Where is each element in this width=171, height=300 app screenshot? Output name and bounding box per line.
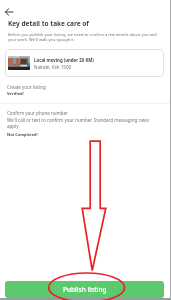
staticText: Create your listing <box>7 84 46 90</box>
button[interactable]: Publish listing <box>5 281 164 298</box>
staticText: Nairobi, Ksh 1500 <box>34 64 72 70</box>
button[interactable]: Back <box>2 5 16 19</box>
staticText: Confirm your phone number <box>7 110 68 116</box>
staticText: Verified! <box>7 91 24 96</box>
staticText: Before you publish your listing, we need… <box>8 32 158 42</box>
staticText: Not Completed! <box>7 132 38 137</box>
staticText: We'll call or text to confirm your numbe… <box>7 117 153 129</box>
staticText: Key detail to take care of <box>8 19 89 28</box>
button[interactable]: Local moving (under 20 KM) <box>5 49 164 77</box>
staticText: Publish listing <box>63 285 107 294</box>
staticText: Local moving (under 20 KM) <box>34 57 94 63</box>
